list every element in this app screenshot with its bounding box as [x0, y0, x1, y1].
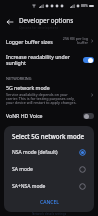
button[interactable]: 5G network mode — [0, 83, 98, 108]
button[interactable]: CANCEL — [34, 197, 65, 208]
staticText: Options for development — [19, 25, 58, 29]
staticText: NSA mode (default) — [12, 149, 79, 156]
button[interactable]: Enable Wi-Fi verbose logging — [0, 123, 98, 149]
staticText: NETWORKING — [6, 76, 32, 81]
button[interactable]: VoNR HD Voice — [0, 108, 98, 123]
staticText: 88% — [81, 3, 88, 8]
button[interactable] — [83, 57, 94, 63]
staticText: Select 5G network mode — [12, 132, 85, 140]
button[interactable]: Increase readability under sunlight — [0, 49, 98, 71]
staticText: Increase readability under sunlight — [6, 53, 70, 67]
staticText: CANCEL — [40, 199, 59, 206]
staticText: Service availability depends on your car… — [6, 92, 77, 106]
button[interactable]: NSA mode (default) — [4, 144, 94, 161]
staticText: SA+NSA mode — [12, 183, 79, 190]
button[interactable]: Back — [3, 15, 17, 29]
staticText: VoNR HD Voice — [6, 112, 43, 119]
button[interactable] — [83, 113, 94, 119]
button[interactable]: SA+NSA mode — [4, 178, 94, 195]
staticText: 5G network mode — [6, 84, 50, 91]
staticText: Developer options — [19, 16, 74, 25]
staticText: 256 KB per log buffer — [62, 36, 88, 46]
staticText: SA mode — [12, 166, 79, 173]
staticText: Increase Wi-Fi logging level, show per S… — [6, 135, 68, 145]
staticText: Network details settings — [32, 212, 67, 216]
button[interactable]: SA mode — [4, 161, 94, 178]
button[interactable] — [83, 133, 94, 139]
staticText: Logger buffer sizes — [6, 38, 62, 45]
button[interactable]: Logger buffer sizes — [0, 32, 98, 49]
